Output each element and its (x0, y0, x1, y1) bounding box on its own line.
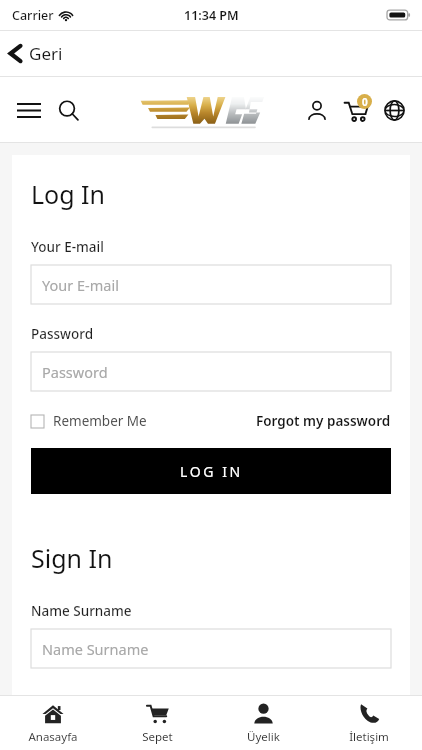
button[interactable]: İletişim (316, 696, 422, 750)
button[interactable]: Password (31, 352, 391, 391)
staticText: Your E-mail (42, 275, 119, 295)
staticText: Anasayfa (28, 729, 78, 745)
button[interactable]: Menu (14, 94, 44, 126)
staticText: Log In (31, 177, 106, 211)
button[interactable]: Search (52, 94, 84, 126)
staticText: Name Surname (42, 639, 149, 659)
staticText: Name Surname (31, 602, 132, 620)
button[interactable]: Your E-mail (31, 265, 391, 304)
staticText: Your E-mail (31, 238, 104, 256)
button[interactable]: Cart, 0 items (339, 93, 373, 127)
staticText: Sign In (31, 541, 113, 575)
button[interactable]: LOG IN (31, 448, 391, 494)
staticText: Password (31, 325, 94, 343)
button[interactable]: Sepet (105, 696, 210, 750)
staticText: Geri (29, 42, 63, 65)
button[interactable]: Geri (0, 31, 422, 76)
button[interactable]: Name Surname (31, 629, 391, 668)
staticText: Password (42, 362, 108, 382)
button[interactable]: Remember Me (31, 412, 147, 430)
button[interactable]: Üyelik (210, 696, 316, 750)
button[interactable]: Anasayfa (0, 696, 105, 750)
staticText: Remember Me (53, 412, 147, 430)
staticText: Sepet (142, 729, 173, 745)
button[interactable]: Forgot my password (256, 412, 391, 430)
staticText: Üyelik (247, 729, 280, 745)
staticText: 0 (362, 95, 368, 109)
staticText: LOG IN (180, 462, 243, 481)
staticText: Carrier (12, 7, 54, 24)
staticText: İletişim (349, 729, 389, 745)
staticText: 11:34 PM (184, 7, 239, 24)
button[interactable]: Account (301, 94, 333, 126)
button[interactable]: WGS home (138, 87, 272, 133)
button[interactable]: Language (378, 94, 410, 126)
